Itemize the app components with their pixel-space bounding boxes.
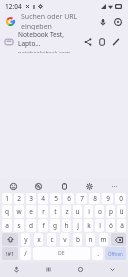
- button[interactable]: 2: [14, 193, 24, 204]
- staticText: 2: [17, 194, 21, 203]
- button[interactable]: Backspace: [111, 233, 126, 246]
- button[interactable]: f: [38, 219, 48, 232]
- staticText: ü: [119, 207, 124, 216]
- button[interactable]: ä: [117, 219, 126, 232]
- button[interactable]: Google: [4, 15, 16, 27]
- staticText: Öffnen: [108, 251, 123, 257]
- button[interactable]: Notebook Test, Lapto…: [0, 30, 128, 53]
- button[interactable]: t: [50, 205, 60, 218]
- button[interactable]: DE: [33, 247, 90, 260]
- staticText: 3: [29, 194, 33, 203]
- staticText: o: [98, 207, 102, 216]
- staticText: v: [63, 235, 67, 244]
- button[interactable]: 8: [89, 193, 100, 204]
- button[interactable]: a: [2, 219, 12, 232]
- button[interactable]: Voice input: [0, 262, 32, 277]
- button[interactable]: k: [84, 219, 93, 232]
- button[interactable]: v: [60, 233, 69, 246]
- button[interactable]: e: [26, 205, 36, 218]
- staticText: j: [77, 221, 79, 230]
- button[interactable]: 0: [115, 193, 126, 204]
- button[interactable]: Shift: [2, 233, 18, 246]
- button[interactable]: l: [95, 219, 104, 232]
- button[interactable]: q: [2, 205, 12, 218]
- staticText: 5: [54, 194, 58, 203]
- staticText: a: [5, 221, 9, 230]
- button[interactable]: Stickers: [33, 181, 44, 192]
- staticText: d: [29, 221, 33, 230]
- button[interactable]: x: [34, 233, 43, 246]
- staticText: DE: [58, 250, 65, 257]
- staticText: k: [87, 221, 91, 230]
- button[interactable]: 4: [38, 193, 48, 204]
- button[interactable]: Öffnen: [105, 247, 126, 260]
- staticText: z: [65, 207, 69, 216]
- button[interactable]: r: [38, 205, 48, 218]
- staticText: f: [42, 221, 45, 230]
- staticText: g: [53, 221, 57, 230]
- staticText: s: [17, 221, 21, 230]
- button[interactable]: Edit: [109, 35, 123, 49]
- staticText: q: [5, 207, 9, 216]
- staticText: !#1: [6, 250, 15, 257]
- button[interactable]: 5: [50, 193, 61, 204]
- button[interactable]: 6: [63, 193, 74, 204]
- staticText: 8: [93, 194, 97, 203]
- button[interactable]: Share: [81, 35, 95, 49]
- staticText: 0: [119, 194, 123, 203]
- staticText: r: [42, 207, 45, 216]
- button[interactable]: 3: [26, 193, 36, 204]
- button[interactable]: Voice search: [96, 15, 109, 28]
- button[interactable]: Emoji: [8, 181, 19, 192]
- button[interactable]: More options: [109, 181, 120, 192]
- staticText: p: [109, 207, 113, 216]
- button[interactable]: g: [50, 219, 60, 232]
- button[interactable]: b: [73, 233, 82, 246]
- staticText: b: [76, 235, 80, 244]
- staticText: 9: [106, 194, 110, 203]
- button[interactable]: z: [62, 205, 71, 218]
- button[interactable]: .: [92, 247, 103, 260]
- staticText: e: [29, 207, 33, 216]
- button[interactable]: Recent apps: [32, 262, 64, 277]
- staticText: Notebook Test, Lapto…: [18, 30, 81, 48]
- button[interactable]: c: [47, 233, 56, 246]
- button[interactable]: j: [73, 219, 82, 232]
- staticText: n: [88, 235, 93, 244]
- button[interactable]: Hide keyboard: [96, 262, 128, 277]
- button[interactable]: n: [86, 233, 95, 246]
- button[interactable]: Settings: [84, 181, 95, 192]
- staticText: /: [24, 249, 27, 258]
- staticText: 6: [67, 194, 71, 203]
- button[interactable]: d: [26, 219, 36, 232]
- button[interactable]: p: [106, 205, 115, 218]
- button[interactable]: h: [62, 219, 71, 232]
- button[interactable]: u: [73, 205, 82, 218]
- button[interactable]: Home: [64, 262, 96, 277]
- staticText: .: [97, 249, 99, 258]
- button[interactable]: 1: [2, 193, 12, 204]
- button[interactable]: Copy: [95, 35, 109, 49]
- staticText: ä: [120, 221, 124, 230]
- button[interactable]: o: [95, 205, 104, 218]
- button[interactable]: i: [84, 205, 93, 218]
- button[interactable]: 9: [102, 193, 113, 204]
- staticText: m: [100, 235, 107, 244]
- staticText: h: [64, 221, 69, 230]
- button[interactable]: m: [99, 233, 108, 246]
- button[interactable]: y: [21, 233, 30, 246]
- button[interactable]: ö: [106, 219, 115, 232]
- staticText: y: [24, 235, 28, 244]
- staticText: l: [99, 221, 101, 230]
- button[interactable]: Clipboard: [59, 181, 70, 192]
- button[interactable]: s: [14, 219, 24, 232]
- button[interactable]: 7: [76, 193, 87, 204]
- button[interactable]: ü: [117, 205, 126, 218]
- staticText: 1: [5, 194, 9, 203]
- button[interactable]: Google Lens: [111, 15, 124, 28]
- staticText: c: [50, 235, 54, 244]
- button[interactable]: /: [20, 247, 31, 260]
- button[interactable]: !#1: [2, 247, 18, 260]
- button[interactable]: Suchen oder URL eingeben: [21, 12, 96, 30]
- button[interactable]: w: [14, 205, 24, 218]
